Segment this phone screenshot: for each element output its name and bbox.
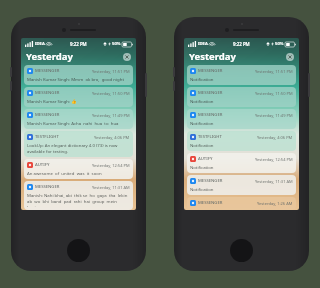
staticText: MESSENGER xyxy=(35,90,60,96)
staticText: Manish Kumar Singh: Acha nahi hua to hua xyxy=(27,120,130,126)
staticText: MESSENGER xyxy=(198,112,223,118)
button[interactable]: AUTIFY xyxy=(187,153,296,173)
staticText: Notification xyxy=(190,120,293,126)
staticText: Yesterday xyxy=(189,50,236,63)
staticText: IDEA xyxy=(35,41,45,47)
staticText: MESSENGER xyxy=(198,68,223,74)
button[interactable]: MESSENGER xyxy=(187,87,296,107)
staticText: TESTFLIGHT xyxy=(35,134,59,140)
staticText: MESSENGER xyxy=(35,184,60,190)
staticText: Notification xyxy=(190,186,293,192)
staticText: LookUp: An elegant dictionary 4.0 (73) i… xyxy=(27,142,130,154)
staticText: Yesterday, 11:50 PM xyxy=(255,91,293,96)
button[interactable]: MESSENGER xyxy=(187,197,296,210)
button[interactable]: MESSENGER xyxy=(24,87,133,107)
staticText: AUTIFY xyxy=(198,156,213,162)
staticText: Yesterday xyxy=(26,50,73,63)
staticText: TESTFLIGHT xyxy=(198,134,222,140)
staticText: Notification xyxy=(190,164,293,170)
staticText: IDEA xyxy=(198,41,208,47)
staticText: Yesterday, 11:51 PM xyxy=(255,69,293,74)
staticText: Notification xyxy=(190,98,293,104)
staticText: Notification xyxy=(190,76,293,82)
staticText: Yesterday, 11:31 AM xyxy=(255,179,293,184)
staticText: Manish: Nahi bhai, abi thik se ho gaya t… xyxy=(27,192,130,207)
button[interactable]: MESSENGER xyxy=(24,65,133,85)
button[interactable]: AUTIFY xyxy=(24,159,133,179)
staticText: Yesterday, 12:54 PM xyxy=(92,163,130,168)
staticText: Manish Kumar Singh: Mmm ok bro, good nig… xyxy=(27,76,130,82)
staticText: 50% xyxy=(112,41,121,47)
staticText: Manish Kumar Singh: 👍 xyxy=(27,98,130,104)
staticText: Yesterday, 4:06 PM xyxy=(257,135,293,140)
staticText: Yesterday, 11:49 PM xyxy=(255,113,293,118)
staticText: Yesterday, 11:51 PM xyxy=(92,69,130,74)
button[interactable]: MESSENGER xyxy=(187,109,296,129)
button[interactable]: MESSENGER xyxy=(24,109,133,129)
button[interactable]: MESSENGER xyxy=(187,65,296,85)
button[interactable]: TESTFLIGHT xyxy=(24,131,133,157)
staticText: MESSENGER xyxy=(198,178,223,184)
button[interactable]: Clear Yesterday notifications xyxy=(123,53,131,61)
button[interactable]: Clear Yesterday notifications xyxy=(286,53,294,61)
staticText: 9:22 PM xyxy=(233,41,250,47)
staticText: Yesterday, 1:26 AM xyxy=(257,201,293,206)
staticText: Yesterday, 11:50 PM xyxy=(92,91,130,96)
staticText: 9:22 PM xyxy=(70,41,87,47)
staticText: MESSENGER xyxy=(198,90,223,96)
staticText: MESSENGER xyxy=(35,112,60,118)
staticText: Yesterday, 11:31 AM xyxy=(92,185,130,190)
staticText: Yesterday, 11:49 PM xyxy=(92,113,130,118)
staticText: MESSENGER xyxy=(198,200,223,206)
staticText: MESSENGER xyxy=(35,68,60,74)
button[interactable]: MESSENGER xyxy=(187,175,296,195)
staticText: An awesome of united was it soon xyxy=(27,170,130,176)
staticText: Yesterday, 12:54 PM xyxy=(255,157,293,162)
staticText: AUTIFY xyxy=(35,162,50,168)
staticText: Notification xyxy=(190,142,293,148)
staticText: Yesterday, 4:06 PM xyxy=(94,135,130,140)
button[interactable]: MESSENGER xyxy=(24,181,133,210)
staticText: 50% xyxy=(275,41,284,47)
button[interactable]: TESTFLIGHT xyxy=(187,131,296,151)
